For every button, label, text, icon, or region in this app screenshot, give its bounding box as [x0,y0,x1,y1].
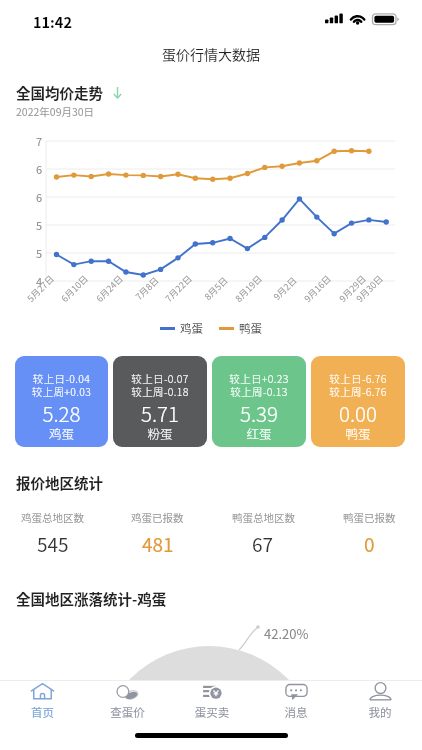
staticText: 鸡蛋 [180,320,203,337]
button[interactable]: 我的 [338,681,422,730]
button[interactable]: 较上日-0.04 [15,356,108,447]
staticText: 5.28 [15,398,108,428]
staticText: 较上日-0.04 [15,371,108,386]
staticText: 消息 [254,704,338,721]
other: 查蛋价 [116,683,139,700]
staticText: 5.71 [113,398,207,428]
other: 蛋买卖 [201,683,224,700]
staticText: 0 [364,530,375,558]
staticText: 较上日-6.76 [311,371,405,386]
staticText: 6月24日 [93,272,126,305]
staticText: 545 [37,530,69,558]
other: 我的 [369,683,392,700]
staticText: 4 [26,273,42,289]
staticText: 2022年09月30日 [16,104,95,119]
staticText: 鸡蛋 [15,424,108,442]
staticText: 鸭蛋已报数 [343,510,396,525]
staticText: 蛋价行情大数据 [162,44,260,64]
staticText: 67 [252,530,274,558]
staticText: 较上日+0.23 [212,371,306,386]
staticText: 8月5日 [201,274,230,303]
staticText: 42.20% [264,624,309,643]
staticText: 6 [26,161,42,177]
staticText: 较上周-6.76 [311,384,405,399]
staticText: 5 [26,245,42,261]
staticText: 6月10日 [58,272,91,305]
staticText: 较上周+0.03 [15,384,108,399]
button[interactable]: 蛋买卖 [170,681,254,730]
staticText: 全国地区涨落统计-鸡蛋 [16,588,167,609]
button[interactable]: 较上日-6.76 [311,356,405,447]
staticText: 鸭蛋 [239,320,262,337]
staticText: 7 [26,133,42,149]
staticText: 较上周-0.13 [212,384,306,399]
staticText: 查蛋价 [85,704,170,721]
other: 消息 [285,683,308,700]
staticText: 0.00 [311,398,405,428]
staticText: 蛋买卖 [170,704,254,721]
button[interactable]: 查蛋价 [85,681,170,730]
staticText: 9月29日 [336,272,369,305]
staticText: 5 [26,217,42,233]
staticText: 5月27日 [24,272,57,305]
staticText: 报价地区统计 [16,472,103,493]
staticText: 我的 [338,704,422,721]
button[interactable]: 首页 [0,681,85,730]
staticText: 鸭蛋 [311,424,405,442]
staticText: 7月22日 [162,272,195,305]
staticText: 全国均价走势 [16,82,103,103]
staticText: 较上周-0.18 [113,384,207,399]
staticText: 鸡蛋已报数 [131,510,184,525]
staticText: 较上日-0.07 [113,371,207,386]
staticText: 11:42 [33,11,72,32]
button[interactable]: 较上日-0.07 [113,356,207,447]
staticText: 9月30日 [353,272,386,305]
staticText: 9月16日 [301,272,334,305]
staticText: 首页 [0,704,85,721]
staticText: 鸭蛋总地区数 [232,510,295,525]
staticText: 481 [142,530,174,558]
staticText: 7月8日 [132,274,161,303]
staticText: 粉蛋 [113,424,207,442]
staticText: 5.39 [212,398,306,428]
staticText: 8月19日 [232,272,265,305]
staticText: 9月2日 [270,274,299,303]
staticText: 6 [26,189,42,205]
button[interactable]: 较上日+0.23 [212,356,306,447]
other: 首页 [31,683,54,700]
staticText: 鸡蛋总地区数 [21,510,84,525]
staticText: 红蛋 [212,424,306,442]
button[interactable]: 消息 [254,681,338,730]
